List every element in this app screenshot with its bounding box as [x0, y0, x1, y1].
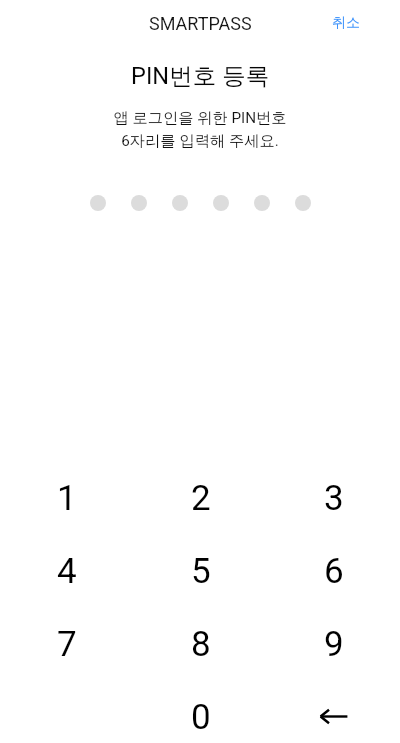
staticText: 6	[324, 551, 344, 592]
staticText: 3	[324, 478, 344, 519]
button[interactable]: 2	[134, 462, 267, 535]
button[interactable]: 6	[267, 535, 400, 608]
button[interactable]: 4	[0, 535, 134, 608]
button[interactable]: 취소	[308, 4, 400, 44]
staticText: 9	[324, 624, 344, 665]
button[interactable]: 8	[134, 608, 267, 681]
staticText: 0	[191, 697, 211, 738]
button[interactable]: 3	[267, 462, 400, 535]
staticText: 2	[191, 478, 211, 519]
staticText: 4	[57, 551, 77, 592]
staticText: 8	[191, 624, 211, 665]
button[interactable]: 5	[134, 535, 267, 608]
button[interactable]: 0	[134, 681, 267, 743]
staticText: 1	[57, 478, 77, 519]
staticText: PIN번호 등록	[131, 61, 269, 91]
staticText: 7	[57, 624, 77, 665]
staticText: 앱 로그인을 위한 PIN번호 6자리를 입력해 주세요.	[113, 108, 287, 150]
button[interactable]: 1	[0, 462, 134, 535]
button[interactable]: 9	[267, 608, 400, 681]
button[interactable]: Delete	[267, 681, 400, 743]
staticText: 취소	[332, 14, 360, 32]
staticText: SMARTPASS	[149, 13, 252, 34]
button[interactable]: 7	[0, 608, 134, 681]
staticText: 5	[191, 551, 211, 592]
